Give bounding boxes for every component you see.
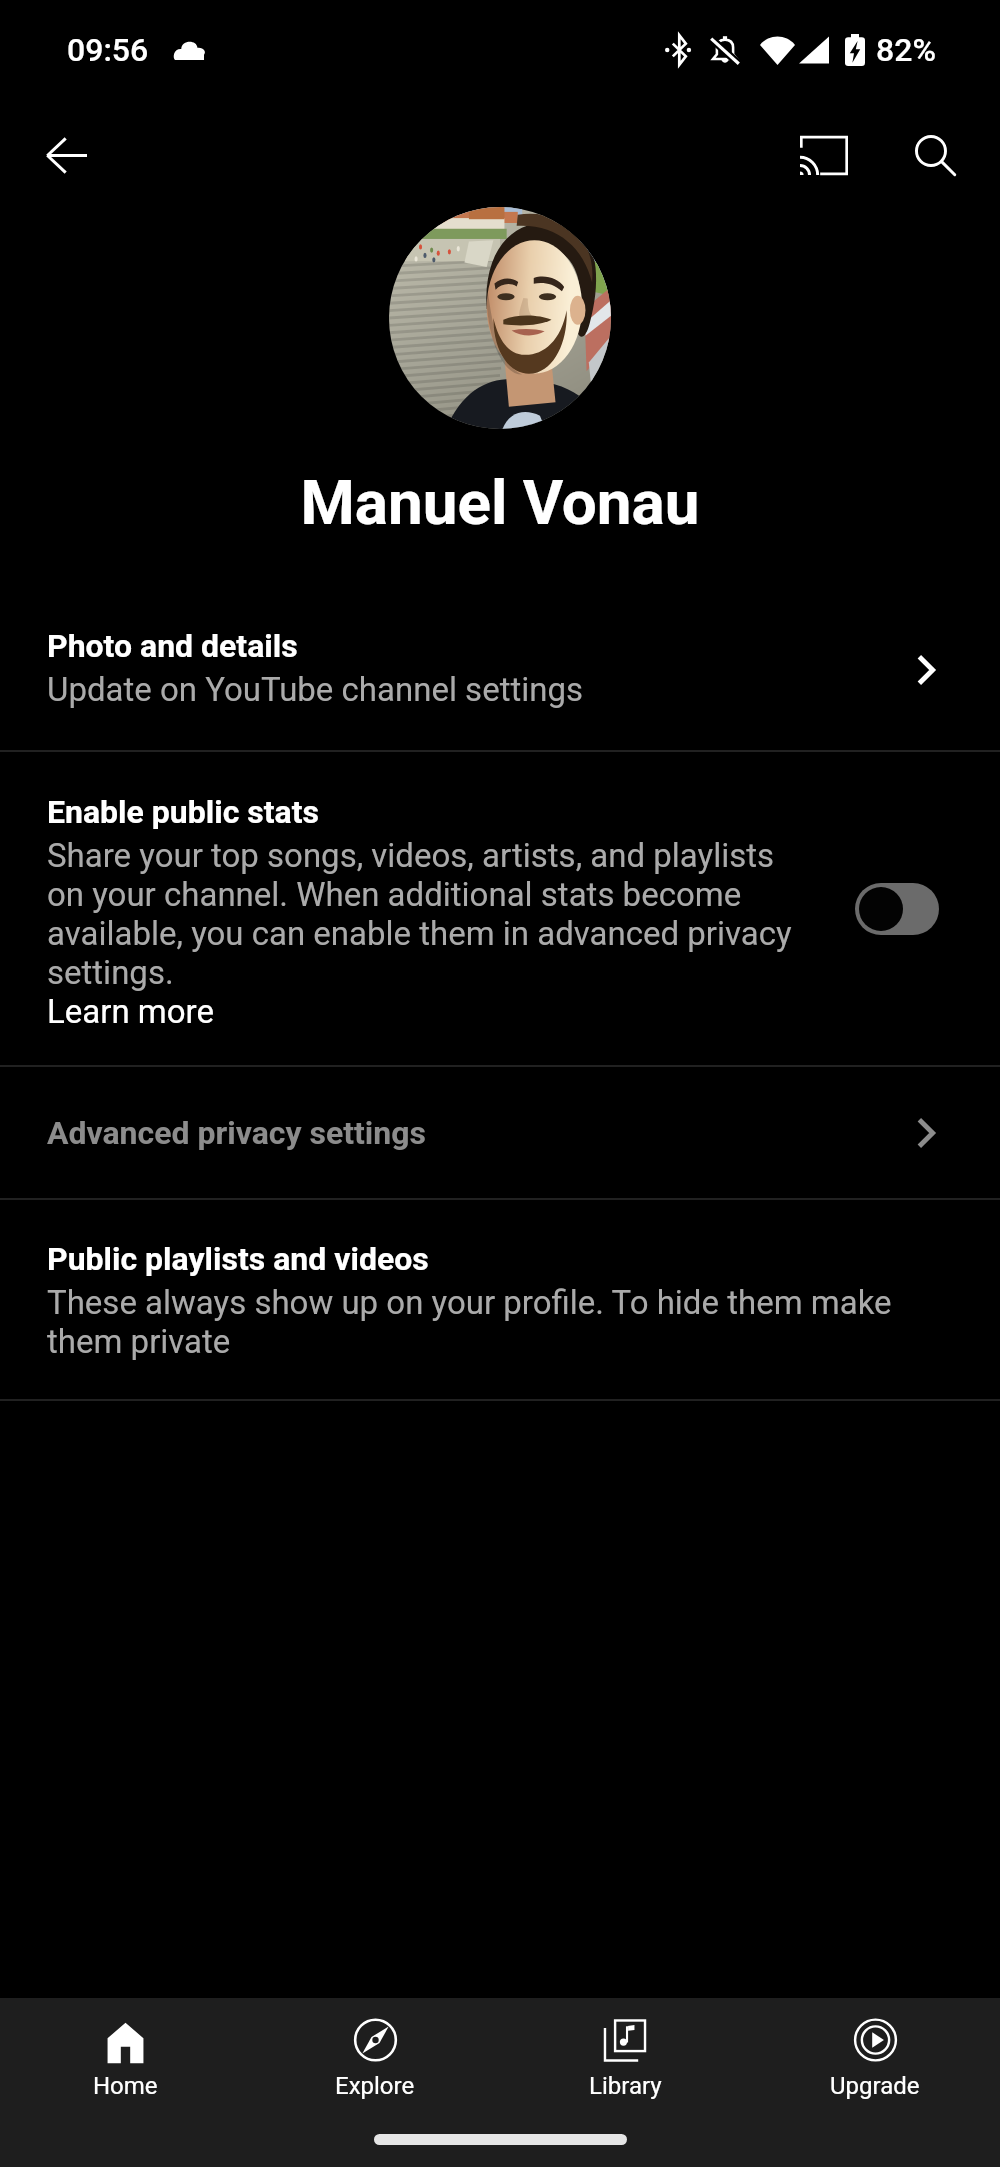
staticText: Library bbox=[589, 2072, 662, 2100]
button[interactable]: Enable public stats bbox=[855, 883, 939, 935]
staticText: Public playlists and videos bbox=[47, 1240, 429, 1278]
staticText: These always show up on your profile. To… bbox=[47, 1283, 910, 1361]
button[interactable]: Home bbox=[0, 1998, 250, 2120]
button[interactable]: Enable public stats bbox=[0, 752, 1000, 1065]
button[interactable]: Profile photo bbox=[389, 207, 611, 429]
button[interactable]: Cast bbox=[783, 114, 865, 196]
button[interactable]: Learn more bbox=[47, 992, 214, 1031]
staticText: Enable public stats bbox=[47, 793, 319, 831]
button[interactable]: Public playlists and videos bbox=[0, 1200, 1000, 1399]
staticText: 09:56 bbox=[67, 31, 149, 69]
staticText: Share your top songs, videos, artists, a… bbox=[47, 836, 810, 992]
staticText: Home bbox=[93, 2072, 158, 2100]
button[interactable]: Advanced privacy settings bbox=[0, 1067, 1000, 1198]
staticText: Update on YouTube channel settings bbox=[47, 670, 584, 709]
staticText: Upgrade bbox=[830, 2072, 920, 2100]
button[interactable]: Upgrade bbox=[750, 1998, 1000, 2120]
staticText: Advanced privacy settings bbox=[47, 1114, 426, 1152]
staticText: Manuel Vonau bbox=[300, 466, 700, 528]
staticText: Photo and details bbox=[47, 627, 298, 665]
staticText: 82% bbox=[876, 31, 936, 69]
staticText: Explore bbox=[335, 2072, 415, 2100]
button[interactable]: Back bbox=[25, 114, 107, 196]
button[interactable]: Explore bbox=[250, 1998, 500, 2120]
button[interactable]: Search bbox=[894, 114, 976, 196]
button[interactable]: Photo and details bbox=[0, 590, 1000, 750]
button[interactable]: Library bbox=[500, 1998, 750, 2120]
